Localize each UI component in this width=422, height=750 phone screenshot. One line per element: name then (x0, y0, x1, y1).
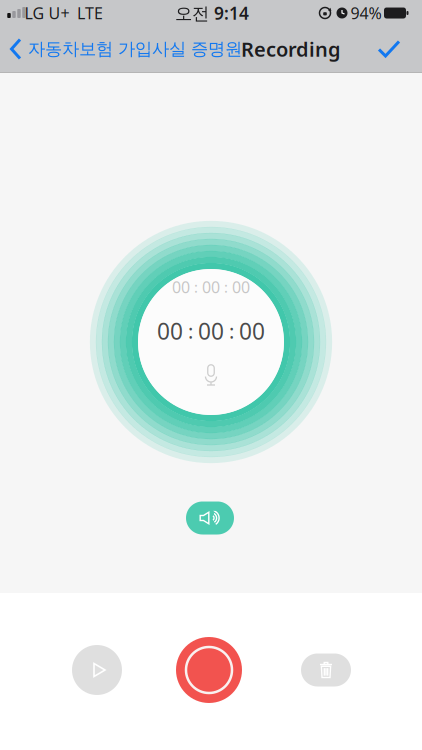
staticText: 00 (198, 316, 224, 346)
staticText: 00 (232, 276, 250, 298)
staticText: : (224, 277, 228, 297)
staticText: LG U+ (24, 2, 69, 24)
staticText: : (229, 318, 234, 344)
button[interactable]: 자동차보험 가입사실 증명원 (10, 38, 242, 60)
staticText: Recording (241, 36, 341, 62)
button[interactable]: Play (72, 645, 122, 695)
staticText: : (194, 277, 198, 297)
button[interactable]: Speaker (186, 501, 234, 534)
staticText: 자동차보험 가입사실 증명원 (28, 38, 242, 60)
staticText: 00 (239, 316, 265, 346)
button[interactable]: Delete (301, 653, 351, 686)
staticText: 00 (157, 316, 183, 346)
staticText: LTE (77, 2, 103, 24)
staticText: 오전 9:14 (175, 1, 249, 24)
button[interactable]: Record (176, 637, 242, 703)
staticText: 94% (350, 2, 381, 24)
staticText: : (188, 318, 193, 344)
button[interactable]: Done (378, 40, 400, 57)
staticText: 00 (202, 276, 220, 298)
staticText: 00 (172, 276, 190, 298)
